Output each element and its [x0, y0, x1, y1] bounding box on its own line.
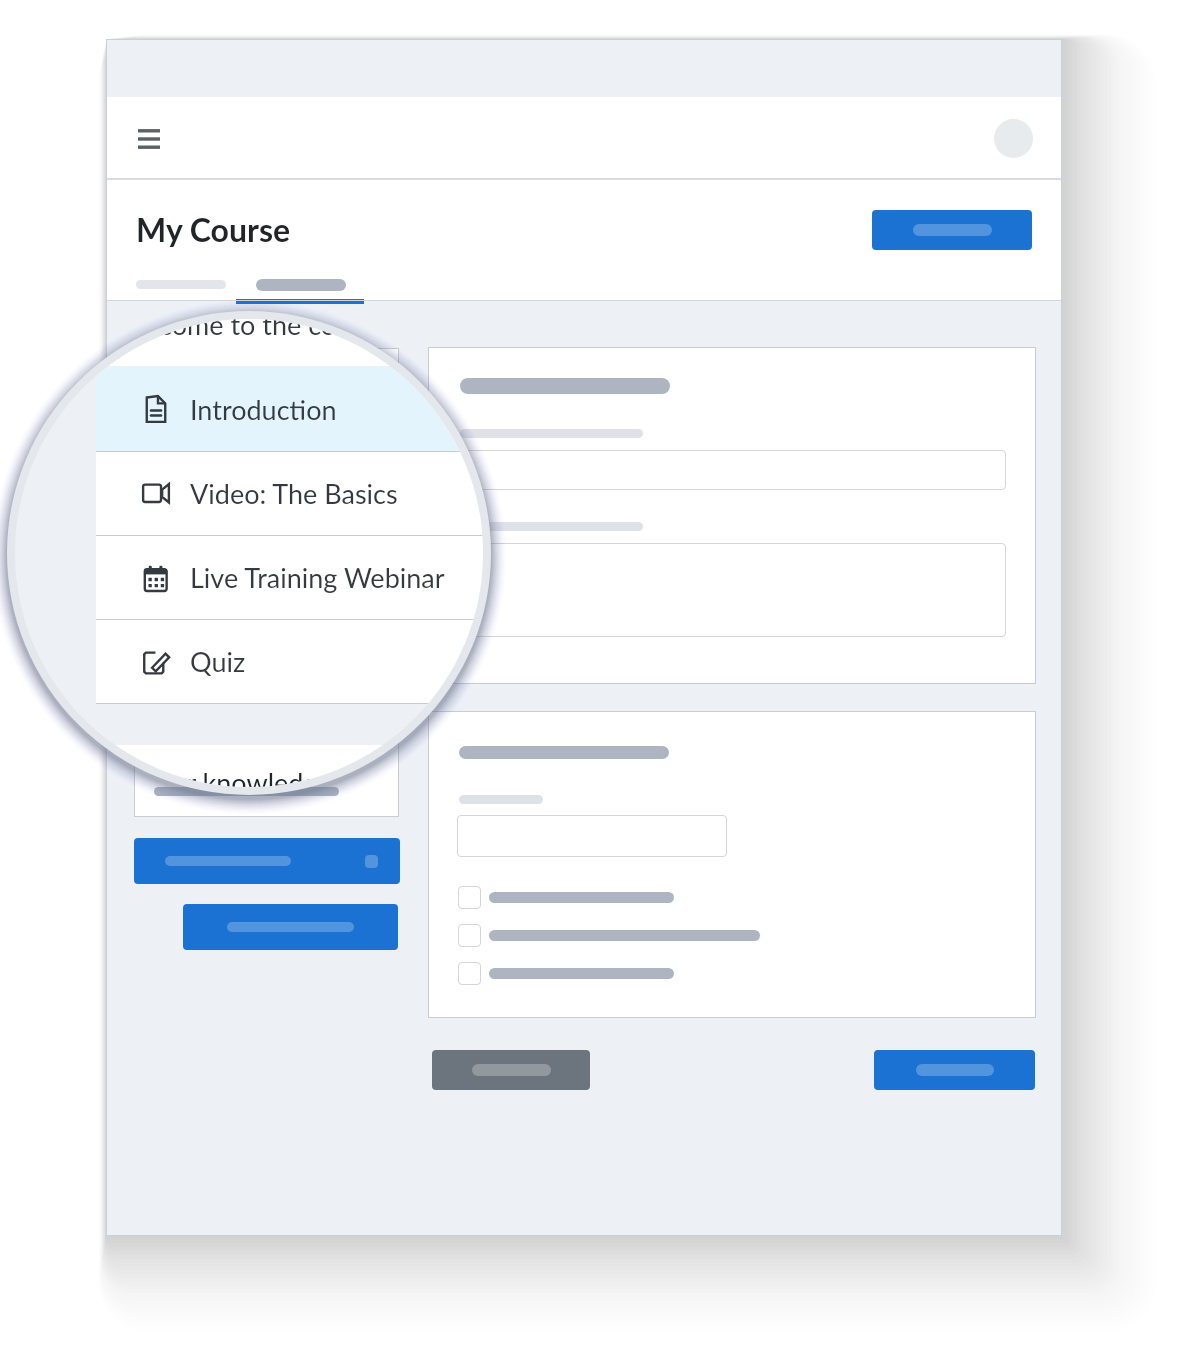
- staticText: Welcome to the course: [112, 319, 387, 340]
- button[interactable]: Video: The Basics: [134, 475, 399, 522]
- button[interactable]: Live Training Webinar: [134, 522, 399, 569]
- staticText: Video: The Basics: [190, 477, 398, 509]
- staticText: Quiz: [189, 584, 220, 602]
- button[interactable]: Quiz: [134, 569, 399, 616]
- button[interactable]: [872, 210, 1032, 250]
- button[interactable]: Live Training Webinar: [96, 535, 483, 619]
- staticText: Introduction: [190, 393, 337, 425]
- button[interactable]: Menu: [128, 118, 170, 160]
- button[interactable]: Option 2: [458, 924, 481, 947]
- button[interactable]: Option 3: [458, 962, 481, 985]
- staticText: My Course: [136, 210, 291, 248]
- button[interactable]: Introduction: [96, 367, 483, 451]
- staticText: Welcome to the course: [148, 364, 311, 383]
- button[interactable]: [134, 838, 400, 884]
- staticText: Introduction: [189, 443, 271, 461]
- staticText: Quiz: [190, 645, 246, 677]
- staticText: Live Training Webinar: [190, 561, 445, 593]
- button[interactable]: [432, 1050, 590, 1090]
- button[interactable]: Account: [994, 119, 1033, 158]
- button[interactable]: Quiz: [96, 619, 483, 703]
- button[interactable]: [874, 1050, 1035, 1090]
- button[interactable]: [183, 904, 398, 950]
- button[interactable]: Introduction: [134, 428, 399, 475]
- staticText: Test your knowledge: [88, 766, 332, 787]
- staticText: Video: The Basics: [189, 490, 305, 508]
- button[interactable]: Option 1: [458, 886, 481, 909]
- button[interactable]: Video: The Basics: [96, 451, 483, 535]
